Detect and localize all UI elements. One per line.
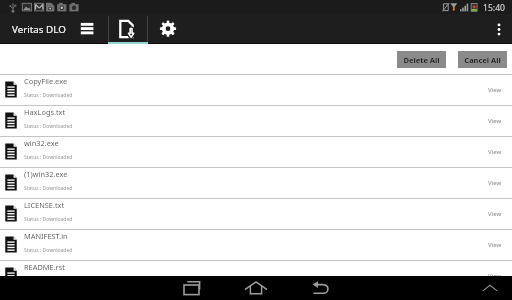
staticText: (1)win32.exe: [24, 169, 68, 179]
button[interactable]: View: [478, 168, 512, 198]
staticText: README.rst: [24, 262, 65, 272]
staticText: Status : Downloaded: [24, 92, 73, 99]
button[interactable]: View: [478, 137, 512, 167]
staticText: View: [488, 272, 502, 280]
staticText: View: [488, 148, 502, 156]
button[interactable]: Delete All: [397, 51, 446, 68]
staticText: Status : Downloaded: [24, 154, 73, 161]
staticText: win32.exe: [24, 138, 59, 148]
button[interactable]: More options: [482, 14, 512, 44]
button[interactable]: View: [478, 75, 512, 105]
button[interactable]: CopyFile.exe: [0, 75, 512, 105]
staticText: Veritas DLO: [12, 23, 66, 36]
button[interactable]: Settings: [148, 14, 188, 44]
button[interactable]: View: [478, 261, 512, 291]
staticText: View: [488, 86, 502, 94]
button[interactable]: setup.py: [0, 292, 512, 300]
staticText: Status : Downloaded: [24, 185, 73, 192]
button[interactable]: View: [478, 230, 512, 260]
staticText: Status : Downloaded: [24, 123, 73, 130]
staticText: Cancel All: [464, 55, 501, 65]
staticText: LICENSE.txt: [24, 200, 65, 210]
staticText: Delete All: [403, 55, 440, 65]
button[interactable]: MANIFEST.in: [0, 230, 512, 260]
button[interactable]: View: [478, 106, 512, 136]
staticText: Status : Downloaded: [24, 216, 73, 223]
button[interactable]: Expand: [478, 276, 502, 300]
button[interactable]: (1)win32.exe: [0, 168, 512, 198]
staticText: View: [488, 241, 502, 249]
button[interactable]: Recent apps: [175, 276, 209, 300]
staticText: 15:40: [483, 2, 505, 14]
staticText: CopyFile.exe: [24, 76, 68, 86]
button[interactable]: Cancel All: [458, 51, 507, 68]
staticText: Status : Downloaded: [24, 247, 73, 254]
staticText: View: [488, 117, 502, 125]
staticText: View: [488, 179, 502, 187]
staticText: MANIFEST.in: [24, 231, 68, 241]
button[interactable]: LICENSE.txt: [0, 199, 512, 229]
button[interactable]: Home: [240, 276, 272, 300]
staticText: HaxLogs.txt: [24, 107, 66, 117]
staticText: View: [488, 210, 502, 218]
button[interactable]: README.rst: [0, 261, 512, 291]
button[interactable]: Menu: [76, 14, 98, 44]
button[interactable]: View: [478, 199, 512, 229]
button[interactable]: HaxLogs.txt: [0, 106, 512, 136]
button[interactable]: Downloads: [108, 14, 148, 44]
button[interactable]: Back: [304, 276, 336, 300]
button[interactable]: win32.exe: [0, 137, 512, 167]
